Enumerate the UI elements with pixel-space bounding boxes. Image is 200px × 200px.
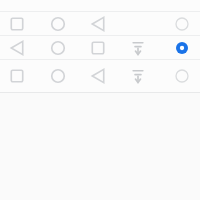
button[interactable]: Recents, Home, Back key layout — [0, 12, 200, 36]
button[interactable]: Back, Home, Recents key layout — [0, 0, 200, 12]
button[interactable]: Recents, Home, Back, Hide navigation bar… — [0, 60, 200, 92]
button[interactable]: Back, Home, Recents, Hide navigation bar… — [0, 36, 200, 60]
